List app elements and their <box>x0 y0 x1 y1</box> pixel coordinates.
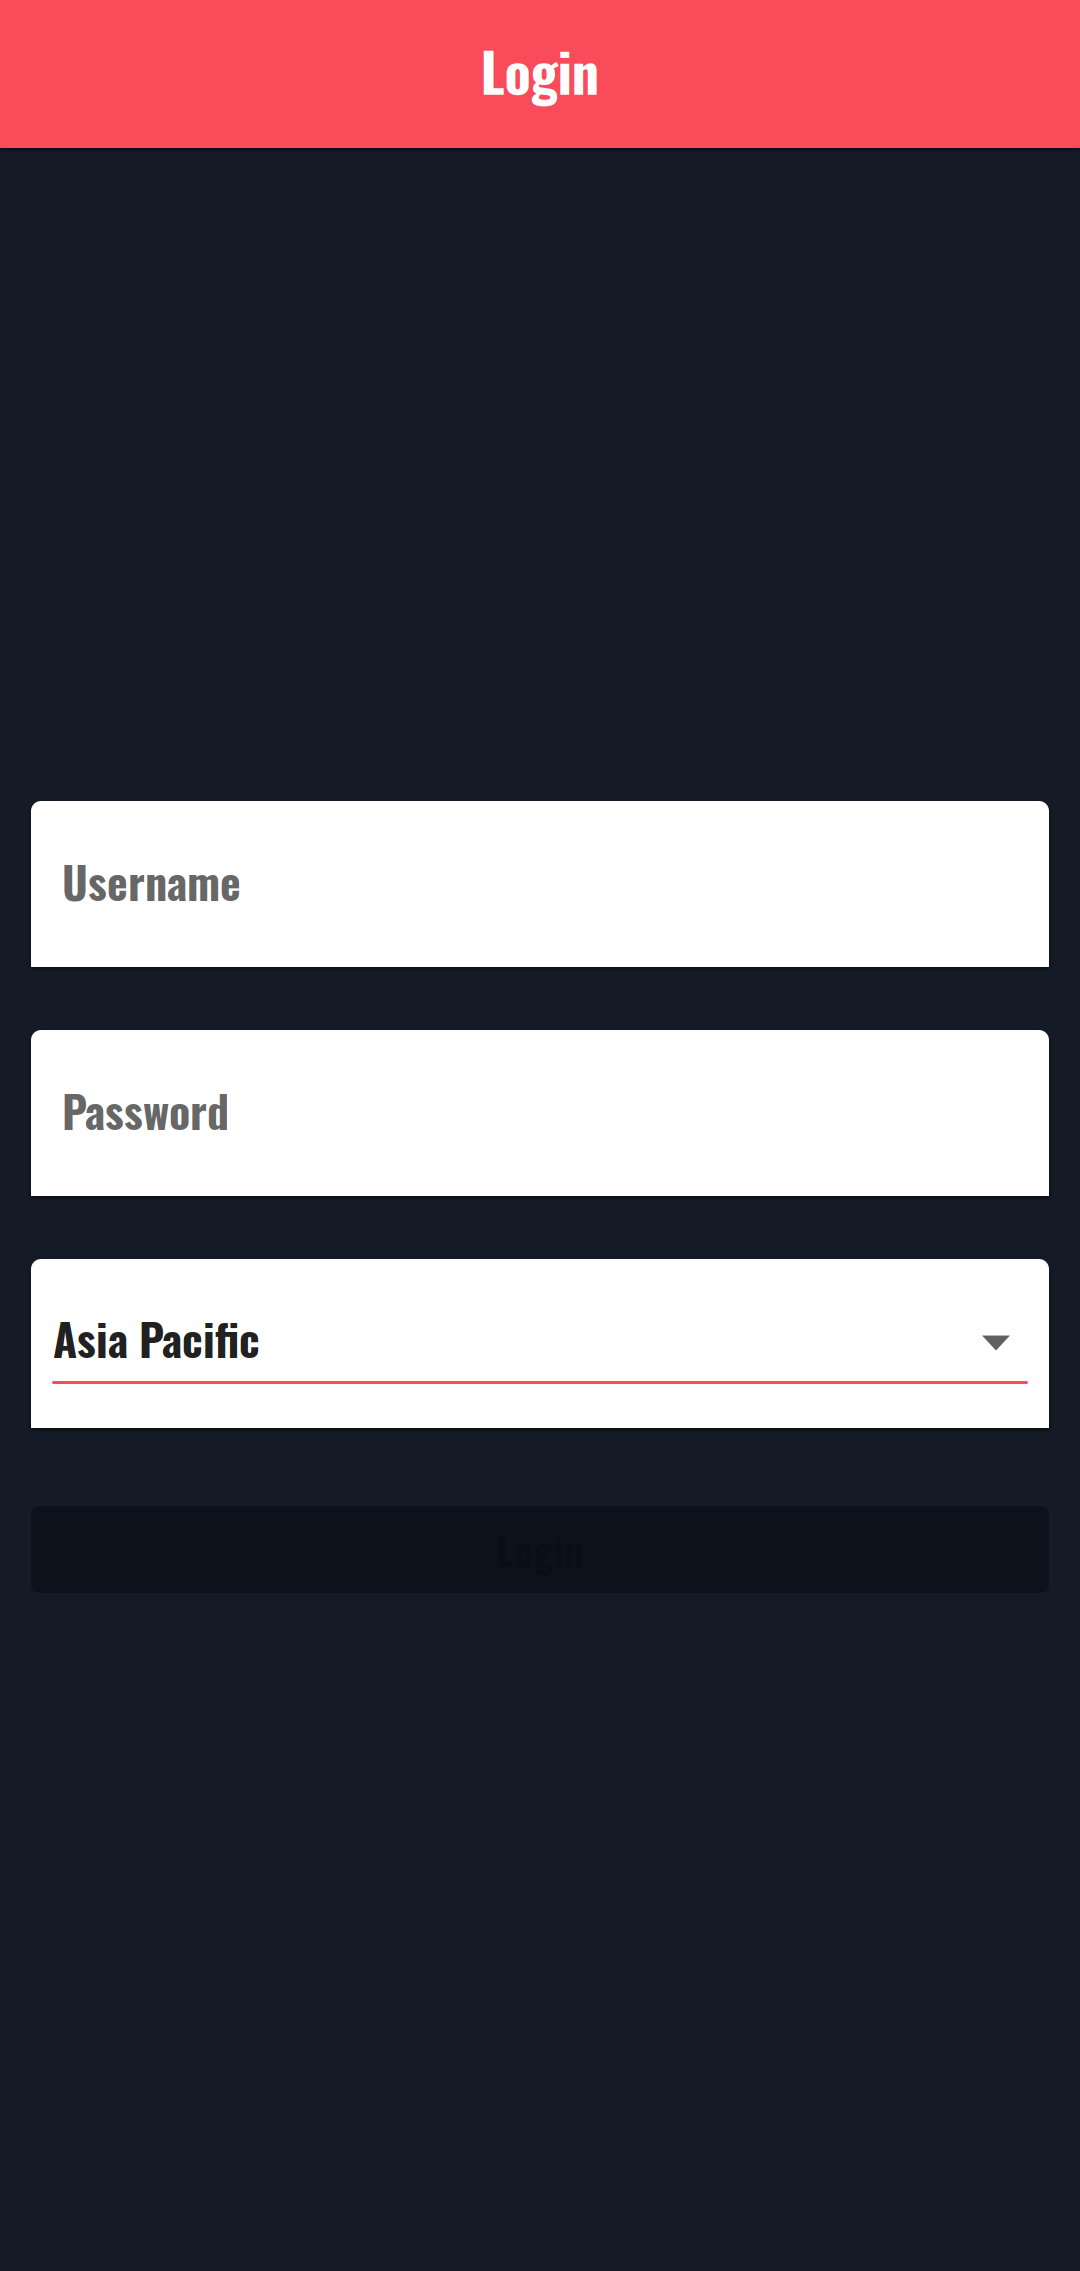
staticText: Login <box>480 29 599 110</box>
button[interactable]: Password <box>31 1030 1049 1196</box>
staticText: Username <box>62 848 241 914</box>
button[interactable]: Asia Pacific <box>31 1259 1049 1428</box>
button[interactable]: Username <box>31 801 1049 967</box>
staticText: Asia Pacific <box>53 1305 260 1371</box>
staticText: Password <box>62 1077 229 1143</box>
